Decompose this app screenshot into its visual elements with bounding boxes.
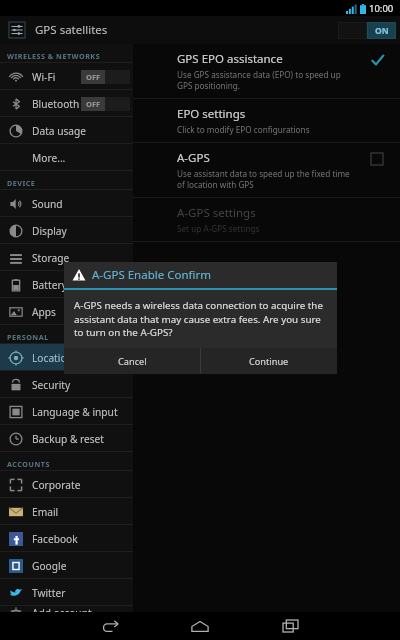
staticText: DEVICE: [7, 178, 36, 188]
staticText: Use GPS assistance data (EPO) to speed u…: [177, 69, 354, 91]
button[interactable]: A-GPS: [133, 143, 400, 198]
staticText: ON: [375, 25, 389, 37]
staticText: Display: [32, 224, 67, 238]
staticText: Cancel: [118, 355, 147, 368]
staticText: WIRELESS & NETWORKS: [7, 51, 101, 61]
staticText: OFF: [86, 99, 101, 109]
staticText: Continue: [249, 355, 289, 368]
button[interactable]: Language & input: [0, 398, 133, 425]
button[interactable]: Bluetooth: [0, 90, 133, 117]
staticText: Bluetooth: [32, 97, 80, 111]
button[interactable]: Display: [0, 217, 133, 244]
staticText: Twitter: [32, 586, 66, 600]
staticText: Google: [32, 559, 67, 573]
staticText: GPS EPO assistance: [177, 51, 283, 67]
button[interactable]: EPO settings: [133, 99, 400, 143]
staticText: EPO settings: [177, 106, 246, 122]
staticText: OFF: [86, 72, 101, 82]
staticText: 10:00: [369, 2, 394, 15]
button[interactable]: Location a: [0, 344, 133, 371]
button[interactable]: Storage: [0, 244, 133, 271]
button[interactable]: More...: [0, 144, 133, 171]
staticText: A-GPS: [177, 150, 210, 166]
button[interactable]: A-GPS settings: [133, 198, 400, 242]
button[interactable]: Data usage: [0, 117, 133, 144]
button[interactable]: Add account: [0, 606, 133, 616]
button[interactable]: Facebook: [0, 525, 133, 552]
button[interactable]: Continue: [201, 348, 337, 374]
button[interactable]: Email: [0, 498, 133, 525]
staticText: ACCOUNTS: [7, 459, 50, 469]
button[interactable]: Sound: [0, 190, 133, 217]
staticText: Storage: [32, 251, 70, 265]
button[interactable]: Apps: [0, 298, 133, 325]
button[interactable]: Twitter: [0, 579, 133, 606]
staticText: Set up A-GPS settings: [177, 223, 260, 234]
button[interactable]: Cancel: [64, 348, 200, 374]
staticText: Apps: [32, 305, 56, 319]
staticText: Corporate: [32, 478, 81, 492]
staticText: Facebook: [32, 532, 78, 546]
staticText: Wi-Fi: [32, 70, 56, 84]
staticText: Security: [32, 378, 71, 392]
staticText: Data usage: [32, 124, 87, 138]
staticText: Add account: [32, 606, 92, 616]
button[interactable]: GPS EPO assistance: [133, 44, 400, 99]
button[interactable]: GPS satellites toggle: [338, 22, 396, 39]
staticText: A-GPS settings: [177, 205, 256, 221]
button[interactable]: Back: [65, 612, 155, 640]
button[interactable]: Google: [0, 552, 133, 579]
staticText: More...: [32, 151, 66, 165]
button[interactable]: Wi-Fi: [0, 63, 133, 90]
button[interactable]: Settings: [7, 20, 27, 40]
staticText: Use assistant data to speed up the fixed…: [177, 168, 354, 190]
staticText: Sound: [32, 197, 63, 211]
staticText: PERSONAL: [7, 332, 49, 342]
staticText: Email: [32, 505, 59, 519]
staticText: Location a: [32, 351, 82, 365]
staticText: Battery: [32, 278, 67, 292]
button[interactable]: Home: [155, 612, 245, 640]
button[interactable]: Security: [0, 371, 133, 398]
staticText: A-GPS needs a wireless data connection t…: [74, 299, 327, 338]
button[interactable]: Backup & reset: [0, 425, 133, 452]
button[interactable]: Battery: [0, 271, 133, 298]
staticText: Language & input: [32, 405, 118, 419]
staticText: Click to modify EPO configurations: [177, 124, 310, 135]
staticText: Backup & reset: [32, 432, 105, 446]
staticText: GPS satellites: [35, 22, 108, 38]
button[interactable]: Corporate: [0, 471, 133, 498]
staticText: A-GPS Enable Confirm: [92, 267, 211, 283]
button[interactable]: Recent apps: [245, 612, 335, 640]
